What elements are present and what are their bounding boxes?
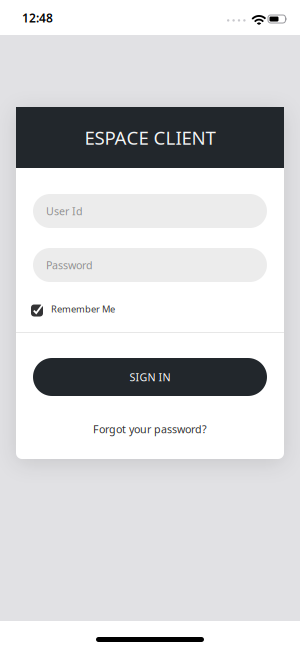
staticText: Password	[46, 258, 93, 272]
button[interactable]: Remember Me	[31, 302, 267, 316]
staticText: Remember Me	[51, 303, 115, 315]
staticText: Forgot your password?	[93, 422, 207, 436]
button[interactable]: SIGN IN	[33, 358, 267, 396]
button[interactable]: Forgot your password?	[93, 422, 207, 436]
staticText: ESPACE CLIENT	[84, 125, 215, 150]
button[interactable]: Password	[33, 248, 267, 282]
staticText: 12:48	[22, 10, 53, 26]
staticText: SIGN IN	[129, 370, 170, 384]
staticText: User Id	[46, 204, 83, 218]
button[interactable]: User Id	[33, 194, 267, 228]
